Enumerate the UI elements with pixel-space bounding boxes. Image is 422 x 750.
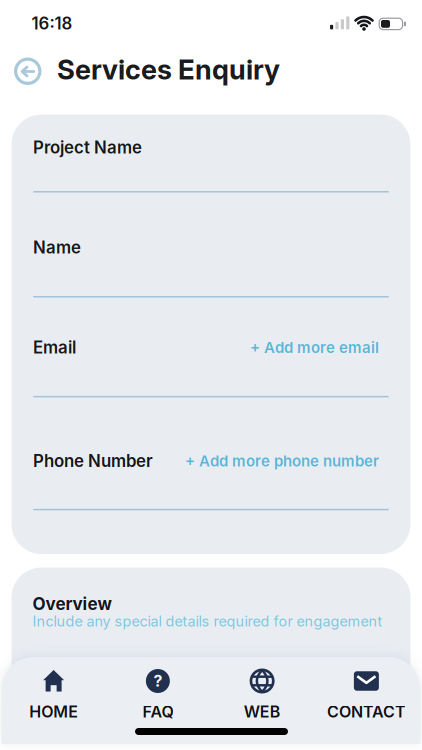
staticText: Name — [33, 237, 81, 258]
staticText: 16:18 — [31, 13, 72, 34]
staticText: CONTACT — [327, 702, 406, 721]
button[interactable]: + Add more phone number — [185, 452, 379, 470]
staticText: Include any special details required for… — [32, 613, 382, 630]
staticText: + Add more phone number — [185, 452, 379, 470]
staticText: Phone Number — [33, 451, 153, 471]
staticText: Project Name — [33, 137, 142, 158]
staticText: WEB — [244, 702, 281, 721]
staticText: FAQ — [142, 702, 173, 721]
staticText: Overview — [32, 593, 111, 614]
staticText: ? — [153, 671, 162, 691]
button[interactable]: ? — [106, 657, 210, 727]
staticText: + Add more email — [250, 338, 379, 356]
button[interactable]: WEB — [210, 657, 314, 727]
staticText: HOME — [29, 702, 78, 721]
staticText: Email — [33, 337, 76, 358]
button[interactable]: + Add more email — [250, 338, 379, 356]
button[interactable]: HOME — [1, 657, 106, 727]
button[interactable]: CONTACT — [314, 657, 418, 727]
button[interactable]: Back — [14, 57, 41, 85]
staticText: Services Enquiry — [57, 53, 280, 86]
